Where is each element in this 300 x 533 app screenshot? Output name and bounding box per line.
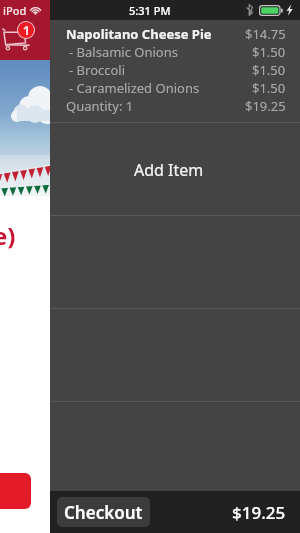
staticText: $19.25 — [245, 97, 286, 115]
staticText: - Broccoli — [69, 61, 126, 79]
staticText: Add Item — [134, 159, 204, 181]
staticText: $1.50 — [252, 79, 286, 97]
staticText: e) — [0, 219, 16, 252]
button[interactable]: Shopping cart, 1 item — [0, 20, 40, 56]
staticText: $19.25 — [232, 501, 286, 524]
button[interactable] — [0, 473, 31, 509]
button[interactable]: Checkout — [57, 497, 150, 527]
staticText: Quantity: 1 — [66, 97, 134, 115]
button[interactable]: Napolitano Cheese Pie — [50, 20, 300, 122]
staticText: iPod — [3, 3, 27, 18]
staticText: - Balsamic Onions — [69, 43, 178, 61]
staticText: - Caramelized Onions — [69, 79, 200, 97]
staticText: Checkout — [64, 501, 143, 524]
staticText: $1.50 — [252, 43, 286, 61]
staticText: Napolitano Cheese Pie — [66, 25, 212, 43]
button[interactable]: Add Item — [50, 123, 300, 215]
staticText: $14.75 — [245, 25, 286, 43]
staticText: $1.50 — [252, 61, 286, 79]
staticText: 1 — [23, 22, 30, 38]
staticText: 5:31 PM — [129, 3, 171, 18]
